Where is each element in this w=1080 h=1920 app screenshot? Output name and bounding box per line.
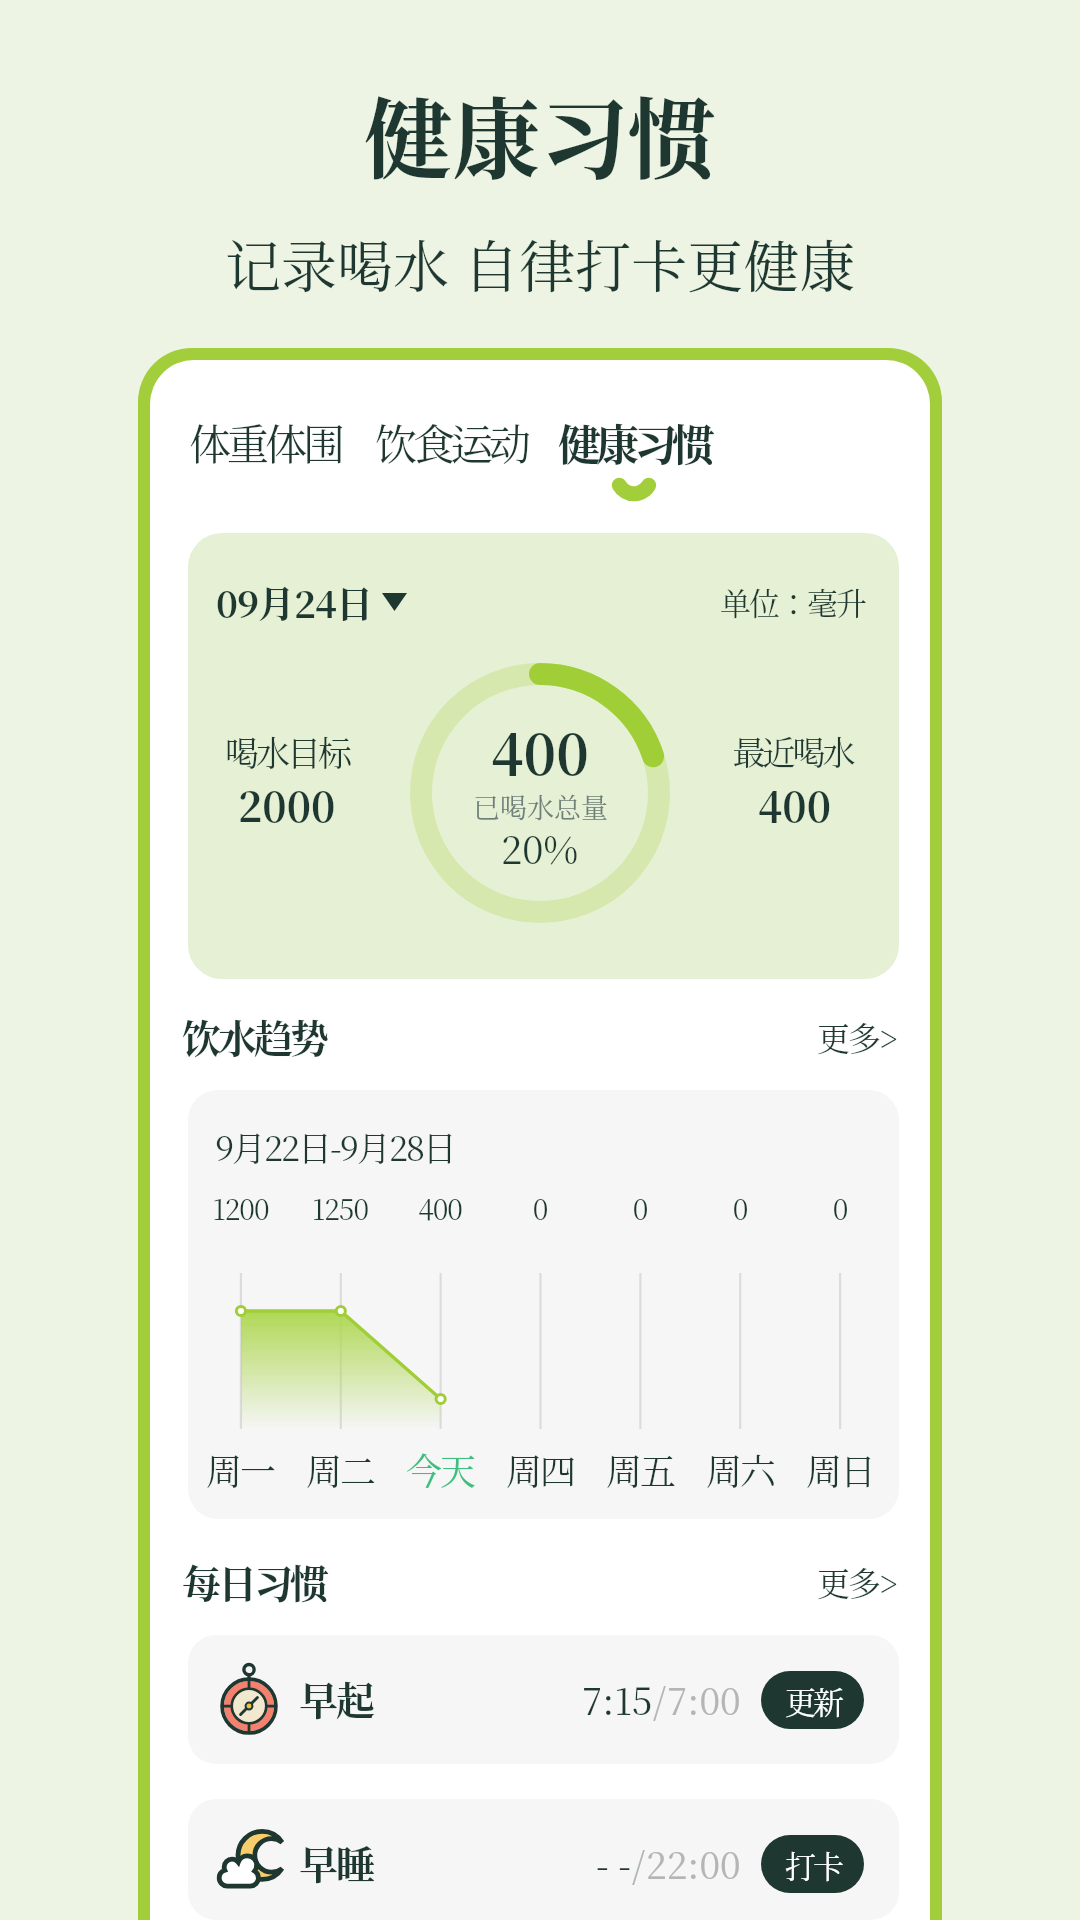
- staticText: 20%: [501, 820, 579, 875]
- staticText: 健康习惯: [558, 412, 710, 474]
- staticText: 2000: [238, 775, 336, 834]
- staticText: 09月24日: [216, 575, 372, 628]
- staticText: 周六: [706, 1444, 775, 1496]
- staticText: 周日: [806, 1444, 875, 1496]
- staticText: 0: [490, 1188, 590, 1228]
- staticText: 1200: [191, 1188, 290, 1228]
- staticText: 周四: [506, 1444, 575, 1496]
- staticText: 更新: [785, 1678, 841, 1723]
- staticText: 22:00: [646, 1836, 741, 1889]
- staticText: 打卡: [785, 1842, 841, 1887]
- staticText: 每日习惯: [182, 1553, 327, 1609]
- staticText: 周一: [206, 1444, 275, 1496]
- staticText: 9月22日-9月28日: [215, 1122, 455, 1171]
- staticText: 0: [790, 1188, 890, 1228]
- staticText: 健康习惯: [364, 70, 717, 196]
- button[interactable]: 09月24日: [216, 575, 407, 628]
- staticText: 0: [590, 1188, 690, 1228]
- staticText: 饮水趋势: [182, 1008, 327, 1064]
- staticText: 今天: [406, 1444, 475, 1496]
- staticText: 400: [390, 1188, 490, 1228]
- other: 早睡: [214, 1827, 294, 1907]
- staticText: /: [632, 1836, 646, 1889]
- staticText: 早睡: [299, 1834, 374, 1890]
- staticText: 更多>: [817, 1013, 897, 1060]
- button[interactable]: 更新: [761, 1671, 864, 1729]
- staticText: 400: [758, 775, 831, 834]
- staticText: 周五: [606, 1444, 675, 1496]
- button[interactable]: 体重体围: [189, 412, 342, 472]
- staticText: 最近喝水: [734, 727, 854, 774]
- button[interactable]: 更多>: [817, 1558, 897, 1605]
- staticText: - -: [596, 1836, 632, 1889]
- button[interactable]: 健康习惯: [558, 412, 710, 506]
- staticText: 1250: [290, 1188, 390, 1228]
- other: 早起: [214, 1663, 284, 1733]
- staticText: 单位：毫升: [720, 579, 865, 624]
- staticText: 0: [690, 1188, 790, 1228]
- button[interactable]: 饮食运动: [375, 412, 528, 472]
- staticText: 体重体围: [189, 412, 342, 472]
- staticText: 饮食运动: [375, 412, 528, 472]
- other: 选择日期: [382, 593, 407, 611]
- staticText: /: [653, 1672, 667, 1725]
- button[interactable]: 早睡: [188, 1799, 899, 1920]
- staticText: 早起: [299, 1670, 374, 1726]
- staticText: 7:15: [582, 1672, 653, 1725]
- button[interactable]: 更多>: [817, 1013, 897, 1060]
- staticText: 更多>: [817, 1558, 897, 1605]
- button[interactable]: 早起: [188, 1635, 899, 1764]
- staticText: 周二: [306, 1444, 375, 1496]
- staticText: 400: [491, 712, 589, 791]
- staticText: 已喝水总量: [473, 787, 608, 826]
- button[interactable]: 打卡: [761, 1835, 864, 1893]
- staticText: 喝水目标: [225, 727, 349, 776]
- staticText: 7:00: [667, 1672, 741, 1725]
- staticText: 记录喝水 自律打卡更健康: [225, 223, 856, 303]
